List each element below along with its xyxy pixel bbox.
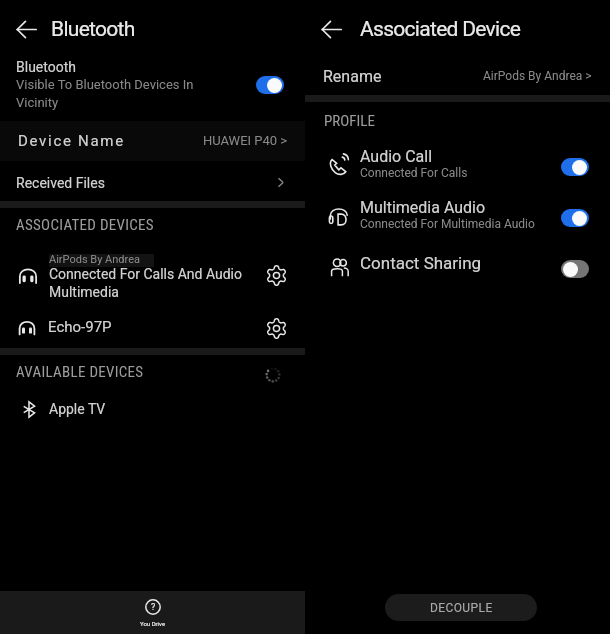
staticText: Echo-97P xyxy=(48,318,112,336)
button[interactable]: Device settings xyxy=(265,317,288,340)
staticText: Audio Call xyxy=(360,147,433,166)
button[interactable]: Apple TV xyxy=(0,393,305,427)
button[interactable]: DECOUPLE xyxy=(385,594,537,621)
staticText: Connected For Calls xyxy=(360,166,468,180)
staticText: Apple TV xyxy=(49,401,106,417)
staticText: AirPods By Andrea xyxy=(49,253,141,266)
staticText: Associated Device xyxy=(360,17,521,42)
staticText: Visible To Bluetooth Devices In Vicinity xyxy=(16,77,232,110)
button[interactable]: Rename xyxy=(305,57,610,95)
staticText: Bluetooth xyxy=(16,59,76,75)
staticText: ? xyxy=(151,602,156,613)
button[interactable]: Multimedia Audio xyxy=(305,192,610,243)
button[interactable]: Echo-97P xyxy=(0,308,305,348)
staticText: Rename xyxy=(323,67,382,86)
button[interactable]: Bluetooth xyxy=(0,56,305,114)
button[interactable]: Toggle on xyxy=(256,76,284,94)
staticText: Connected For Multimedia Audio xyxy=(360,217,535,231)
staticText: AVAILABLE DEVICES xyxy=(16,363,144,381)
staticText: Received Files xyxy=(16,175,105,191)
button[interactable]: Back xyxy=(11,14,41,44)
staticText: PROFILE xyxy=(324,112,375,130)
button[interactable]: Toggle on xyxy=(561,209,589,227)
staticText: DECOUPLE xyxy=(430,601,493,615)
button[interactable]: AirPods By Andrea xyxy=(0,248,305,304)
button[interactable]: Device settings xyxy=(265,264,288,287)
button[interactable]: Toggle off xyxy=(561,260,589,278)
button[interactable]: Toggle on xyxy=(561,158,589,176)
staticText: HUAWEI P40 > xyxy=(203,133,288,148)
button[interactable]: ? xyxy=(126,594,180,632)
staticText: Bluetooth xyxy=(51,17,135,42)
staticText: Multimedia Audio xyxy=(360,198,486,217)
button[interactable]: Contact Sharing xyxy=(305,243,610,294)
staticText: You Drive xyxy=(140,620,166,627)
staticText: ASSOCIATED DEVICES xyxy=(16,216,154,234)
staticText: Contact Sharing xyxy=(360,253,482,273)
button[interactable]: Audio Call xyxy=(305,141,610,192)
staticText: Device Name xyxy=(18,132,125,150)
staticText: Connected For Calls And Audio Multimedia xyxy=(49,266,249,301)
button[interactable]: Device Name xyxy=(0,121,305,161)
button[interactable]: Received Files xyxy=(0,164,305,202)
staticText: AirPods By Andrea > xyxy=(483,69,592,83)
button[interactable]: Back xyxy=(316,14,346,44)
